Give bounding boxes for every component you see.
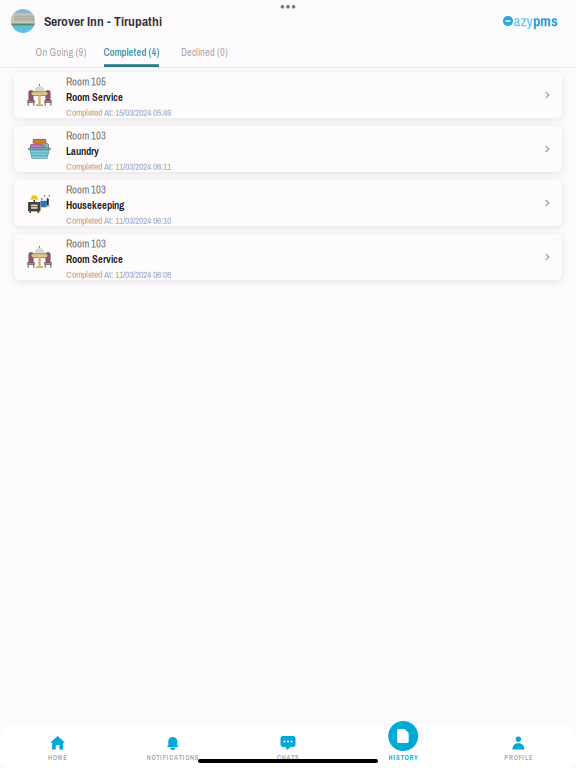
staticText: Room 105 [66,74,106,89]
button[interactable]: HOME [0,720,115,768]
staticText: CHATS [277,753,299,762]
staticText: Room Service [66,252,123,266]
staticText: pms [533,11,558,31]
button[interactable]: Completed (4) [94,37,169,67]
button[interactable]: On Going (9) [28,37,94,67]
staticText: Completed At: 11/03/2024 06:11 [66,160,171,173]
staticText: Completed At: 15/03/2024 05:49 [66,106,171,119]
staticText: Serover Inn - Tirupathi [44,12,162,30]
button[interactable]: Room 103 [14,126,562,172]
button[interactable]: Room 103 [14,180,562,226]
staticText: Room Service [66,90,123,104]
staticText: NOTIFICATIONS [147,753,199,762]
staticText: Room 103 [66,236,106,251]
button[interactable]: NOTIFICATIONS [115,720,230,768]
staticText: PROFILE [504,753,533,762]
staticText: Laundry [66,144,99,158]
staticText: HISTORY [388,753,418,762]
staticText: Completed At: 11/03/2024 06:08 [66,268,171,281]
button[interactable]: Room 105 [14,72,562,118]
staticText: Room 103 [66,128,106,143]
staticText: Declined (0) [181,45,228,59]
staticText: Room 103 [66,182,106,197]
staticText: On Going (9) [35,45,86,59]
staticText: Housekeeping [66,198,124,212]
button[interactable]: PROFILE [461,720,576,768]
button[interactable]: CHATS [230,720,346,768]
staticText: Completed At: 11/03/2024 06:10 [66,214,171,227]
button[interactable]: Declined (0) [169,37,240,67]
staticText: HOME [48,753,67,762]
button[interactable]: HISTORY [346,720,461,768]
staticText: azy [513,11,532,31]
staticText: Completed (4) [103,45,159,59]
button[interactable]: Room 103 [14,234,562,280]
